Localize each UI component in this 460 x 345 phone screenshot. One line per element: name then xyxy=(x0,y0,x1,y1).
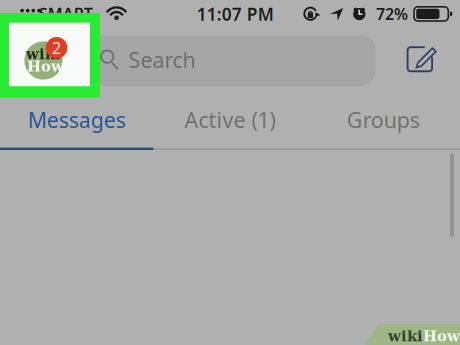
staticText: Active (1) xyxy=(184,105,275,134)
staticText: Messages xyxy=(28,105,126,134)
staticText: Search xyxy=(129,45,196,74)
button[interactable]: New message xyxy=(395,37,445,83)
button[interactable]: Messages xyxy=(0,94,153,146)
staticText: wiki xyxy=(26,45,61,63)
staticText: 2 xyxy=(52,37,61,58)
button[interactable]: Active (1) xyxy=(153,94,307,146)
staticText: wiki xyxy=(388,327,423,345)
button[interactable]: Search xyxy=(71,35,375,86)
button[interactable]: Groups xyxy=(307,94,460,146)
staticText: 11:07 PM xyxy=(197,3,274,26)
staticText: How xyxy=(423,327,460,345)
staticText: Groups xyxy=(347,105,420,134)
staticText: 72% xyxy=(376,3,408,24)
staticText: How xyxy=(27,58,64,75)
staticText: SMART xyxy=(39,3,93,24)
